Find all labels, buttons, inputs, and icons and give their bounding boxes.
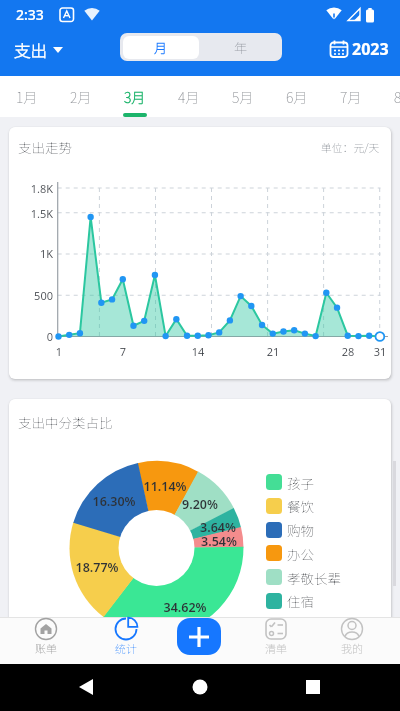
button[interactable]: 2月	[54, 76, 108, 117]
staticText: 月	[154, 38, 168, 57]
button[interactable]: 8月	[378, 76, 400, 117]
staticText: 孝敬长辈	[287, 568, 341, 588]
staticText: 孩子	[287, 473, 314, 493]
staticText: 2:33	[16, 5, 44, 24]
staticText: 3月	[124, 87, 146, 107]
staticText: 3.64%	[188, 519, 248, 536]
staticText: 5月	[232, 87, 254, 107]
staticText: 1K	[14, 246, 53, 261]
staticText: 8月	[394, 87, 400, 107]
staticText: 1.5K	[14, 206, 53, 221]
staticText: 1	[47, 344, 71, 359]
staticText: 34.62%	[155, 599, 215, 616]
staticText: 2月	[70, 87, 92, 107]
staticText: 支出中分类占比	[18, 412, 113, 432]
staticText: 住宿	[287, 591, 314, 611]
staticText: 21	[261, 344, 285, 359]
button[interactable]: 4月	[162, 76, 216, 117]
staticText: 1.8K	[14, 181, 53, 196]
staticText: 7	[111, 344, 135, 359]
staticText: 7月	[340, 87, 362, 107]
staticText: 支出走势	[18, 137, 72, 157]
button[interactable]: 3月	[108, 76, 162, 117]
staticText: 18.77%	[67, 559, 127, 576]
staticText: 0	[14, 329, 53, 344]
button[interactable]: 7月	[324, 76, 378, 117]
staticText: 清单	[265, 640, 287, 656]
staticText: 28	[336, 344, 360, 359]
staticText: 年	[234, 38, 248, 57]
button[interactable]: 5月	[216, 76, 270, 117]
button[interactable]: 清单	[238, 617, 314, 664]
staticText: 4月	[178, 87, 200, 107]
button[interactable]: 账单	[8, 617, 84, 664]
staticText: 支出	[14, 38, 47, 62]
staticText: 我的	[341, 640, 363, 656]
staticText: 6月	[286, 87, 308, 107]
staticText: 9.20%	[170, 496, 230, 513]
staticText: 14	[186, 344, 210, 359]
button[interactable]	[177, 618, 221, 655]
staticText: 31	[368, 344, 392, 359]
staticText: 账单	[35, 640, 57, 656]
staticText: 16.30%	[84, 493, 144, 510]
staticText: 11.14%	[135, 478, 195, 495]
staticText: 购物	[287, 520, 314, 540]
button[interactable]: 6月	[270, 76, 324, 117]
staticText: 办公	[287, 544, 314, 564]
staticText: 1月	[16, 87, 38, 107]
staticText: 单位：元/天	[321, 139, 380, 155]
staticText: 统计	[115, 640, 137, 656]
staticText: 3.54%	[189, 533, 249, 550]
staticText: 2023	[352, 38, 389, 60]
button[interactable]: 支出	[14, 38, 63, 62]
staticText: 餐饮	[287, 496, 314, 516]
button[interactable]: 我的	[314, 617, 390, 664]
button[interactable]: 年	[203, 36, 279, 59]
staticText: 500	[14, 288, 53, 303]
button[interactable]: 2023	[330, 38, 389, 60]
button[interactable]: 1月	[0, 76, 54, 117]
button[interactable]: 月	[123, 36, 199, 59]
button[interactable]: 统计	[88, 617, 164, 664]
